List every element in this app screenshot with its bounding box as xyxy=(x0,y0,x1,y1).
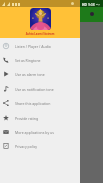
staticText: HD xyxy=(82,3,87,7)
button[interactable]: Provide rating xyxy=(0,111,80,125)
button[interactable]: Set as Ringtone xyxy=(0,53,80,67)
staticText: More applications by us xyxy=(15,130,54,135)
button[interactable]: Use as notification tone xyxy=(0,82,80,96)
staticText: Set as Ringtone xyxy=(15,58,41,63)
button[interactable]: Privacy policy xyxy=(0,139,80,153)
staticText: Use as alarm tone xyxy=(15,72,45,77)
staticText: Ashta Laxmi Stotram xyxy=(0,32,80,36)
staticText: Listen / Player / Audio xyxy=(15,44,51,49)
staticText: Share this application xyxy=(15,101,51,106)
staticText: 9:08 xyxy=(88,2,95,7)
button[interactable]: Share this application xyxy=(0,96,80,110)
staticText: Privacy policy xyxy=(15,144,38,149)
button[interactable]: Listen / Player / Audio xyxy=(0,39,80,53)
button[interactable]: Use as alarm tone xyxy=(0,67,80,81)
staticText: Use as notification tone xyxy=(15,87,54,92)
staticText: Provide rating xyxy=(15,116,39,121)
button[interactable]: More applications by us xyxy=(0,125,80,139)
